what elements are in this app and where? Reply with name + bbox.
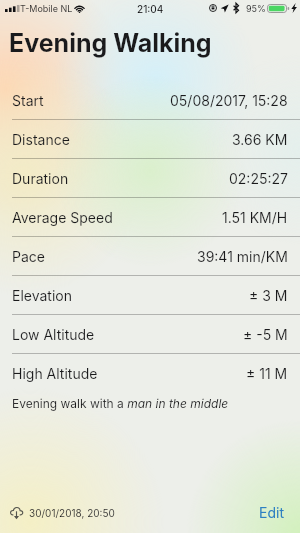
button[interactable]: Elevation <box>0 276 300 315</box>
staticText: ± 11 M <box>246 365 288 382</box>
button[interactable]: Duration <box>0 159 300 198</box>
button[interactable]: Distance <box>0 120 300 159</box>
button[interactable]: Low Altitude <box>0 315 300 354</box>
staticText: 1.51 KM/H <box>222 209 288 226</box>
button[interactable]: High Altitude <box>0 354 300 393</box>
staticText: 39:41 min/KM <box>197 248 288 265</box>
staticText: Low Altitude <box>12 326 95 343</box>
staticText: High Altitude <box>12 365 98 382</box>
staticText: 21:04 <box>137 3 164 15</box>
button[interactable]: Downloaded <box>9 505 115 520</box>
staticText: Distance <box>12 131 70 148</box>
staticText: ± 3 M <box>249 287 288 304</box>
staticText: Average Speed <box>12 209 113 226</box>
staticText: Edit <box>259 504 284 521</box>
button[interactable]: Pace <box>0 237 300 276</box>
staticText: Evening walk with a man in the middle <box>12 396 229 411</box>
staticText: 95% <box>246 3 266 14</box>
other: Downloaded <box>9 505 24 520</box>
staticText: 3.66 KM <box>232 131 288 148</box>
staticText: Duration <box>12 170 69 187</box>
staticText: 05/08/2017, 15:28 <box>170 92 288 109</box>
button[interactable]: Average Speed <box>0 198 300 237</box>
staticText: ± -5 M <box>243 326 288 343</box>
staticText: 30/01/2018, 20:50 <box>29 507 115 519</box>
staticText: Pace <box>12 248 45 265</box>
staticText: T-Mobile NL <box>20 3 73 14</box>
button[interactable]: Edit <box>259 504 300 521</box>
button[interactable]: Start <box>0 81 300 120</box>
staticText: Start <box>12 92 44 109</box>
staticText: 02:25:27 <box>229 170 288 187</box>
staticText: Elevation <box>12 287 72 304</box>
staticText: Evening Walking <box>9 28 212 58</box>
